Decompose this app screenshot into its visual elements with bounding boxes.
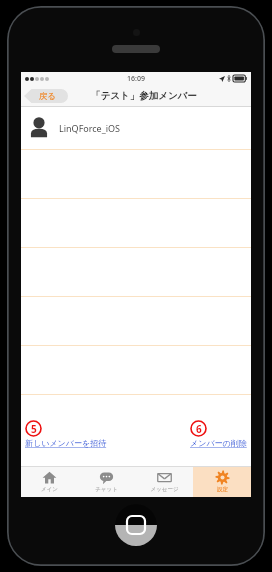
other: メイン: [42, 470, 57, 485]
button[interactable]: メッセージ: [135, 467, 193, 497]
other: 設定: [215, 470, 230, 485]
staticText: 「テスト」参加メンバー: [91, 90, 197, 102]
button[interactable]: 戻る: [24, 89, 68, 103]
staticText: 新しいメンバーを招待: [25, 438, 107, 448]
staticText: 戻る: [39, 91, 57, 102]
staticText: LinQForce_iOS: [59, 122, 120, 134]
staticText: チャット: [95, 486, 118, 493]
other: メッセージ: [157, 470, 172, 485]
staticText: メッセージ: [150, 486, 179, 493]
other: チャット: [99, 470, 114, 485]
staticText: 6: [196, 422, 202, 436]
button[interactable]: 5: [25, 420, 107, 448]
staticText: メイン: [41, 486, 58, 493]
button[interactable]: チャット: [78, 467, 135, 497]
staticText: 設定: [217, 486, 228, 493]
button[interactable]: メイン: [21, 467, 78, 497]
staticText: 16:09: [127, 74, 145, 84]
staticText: 5: [31, 422, 37, 436]
button[interactable]: 設定: [193, 467, 251, 497]
staticText: メンバーの削除: [190, 438, 247, 448]
button[interactable]: LinQForce_iOS: [21, 107, 251, 149]
button[interactable]: 6: [190, 420, 247, 448]
